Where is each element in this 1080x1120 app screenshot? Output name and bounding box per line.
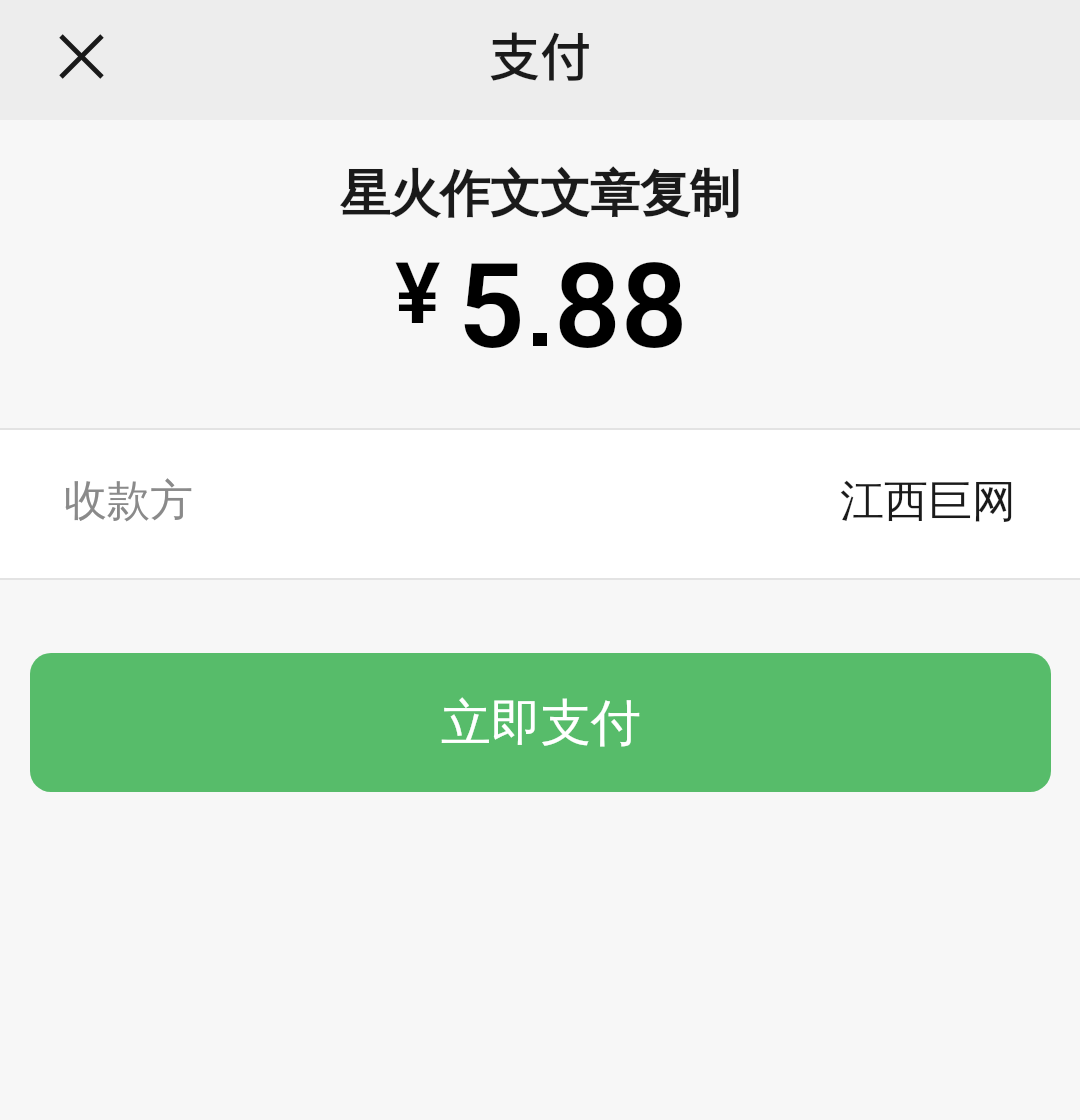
button[interactable]: 立即支付 <box>30 653 1051 792</box>
staticText: ¥ <box>395 244 441 344</box>
staticText: 星火作文文章复制 <box>340 163 740 226</box>
staticText: 收款方 <box>64 474 193 528</box>
button[interactable]: Close <box>36 11 126 101</box>
staticText: 立即支付 <box>441 692 641 755</box>
staticText: 支付 <box>489 17 592 91</box>
staticText: 江西巨网 <box>840 474 1016 529</box>
staticText: 88 <box>554 238 688 375</box>
staticText: 5 <box>458 238 525 375</box>
button[interactable]: 收款方 <box>0 430 1080 578</box>
